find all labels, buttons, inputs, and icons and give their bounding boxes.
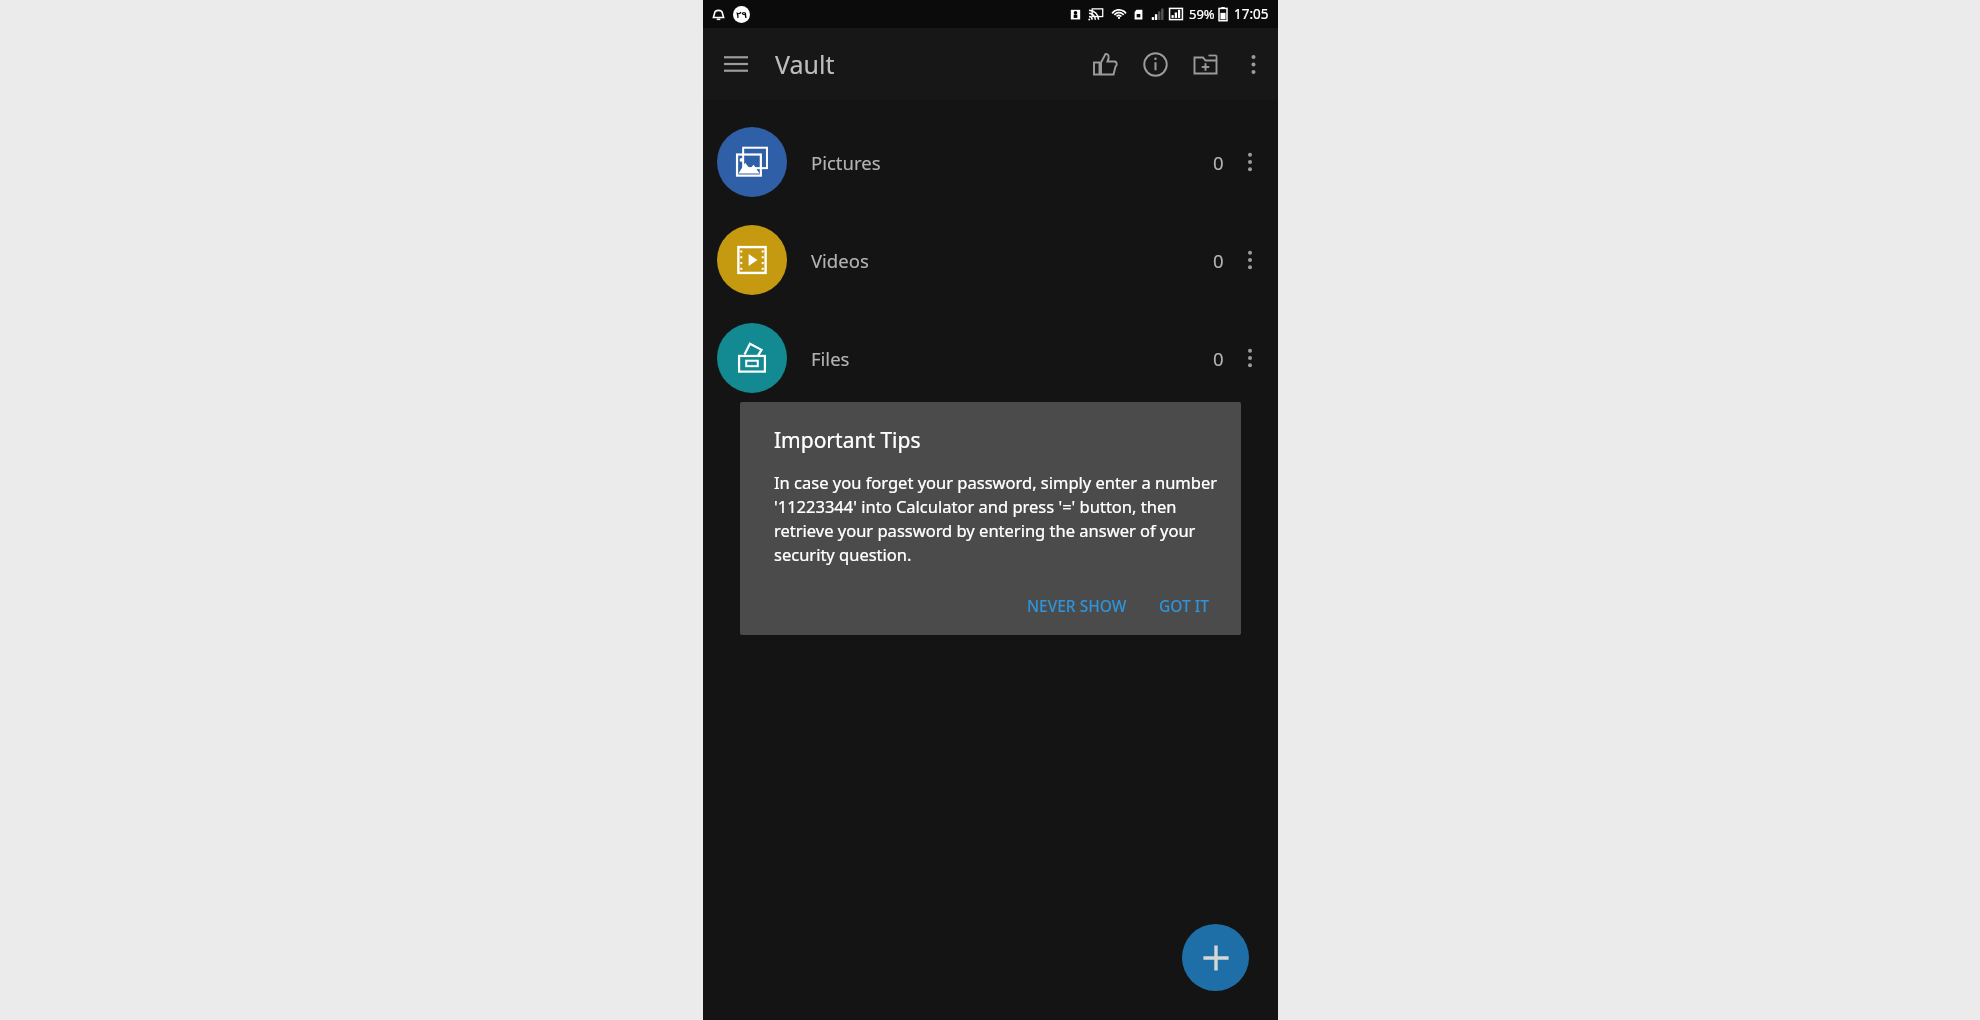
staticText: 59%	[1189, 5, 1215, 23]
button[interactable]: More options	[1230, 41, 1276, 87]
staticText: In case you forget your password, simply…	[774, 471, 1219, 566]
button[interactable]: New folder	[1180, 39, 1230, 89]
staticText: Important Tips	[774, 426, 921, 455]
button[interactable]: Open navigation drawer	[711, 39, 761, 89]
button[interactable]: NEVER SHOW	[1017, 586, 1137, 625]
button[interactable]: More options for Files	[1224, 332, 1276, 384]
button[interactable]: Videos	[703, 211, 1278, 309]
staticText: GOT IT	[1159, 595, 1209, 616]
staticText: Files	[811, 346, 850, 371]
button[interactable]: Files	[703, 309, 1278, 407]
staticText: NEVER SHOW	[1027, 595, 1127, 616]
staticText: ٢٩	[736, 10, 747, 20]
button[interactable]: Pictures	[703, 113, 1278, 211]
staticText: Pictures	[811, 150, 881, 175]
staticText: 0	[1213, 150, 1224, 175]
staticText: Vault	[775, 47, 835, 81]
button[interactable]: GOT IT	[1149, 586, 1219, 625]
staticText: 17:05	[1234, 5, 1269, 23]
button[interactable]: More options for Pictures	[1224, 136, 1276, 188]
button[interactable]: Add	[1182, 924, 1249, 991]
staticText: 0	[1213, 346, 1224, 371]
button[interactable]: More options for Videos	[1224, 234, 1276, 286]
button[interactable]: Information	[1130, 39, 1180, 89]
staticText: Videos	[811, 248, 869, 273]
button[interactable]: Like	[1080, 39, 1130, 89]
staticText: 0	[1213, 248, 1224, 273]
